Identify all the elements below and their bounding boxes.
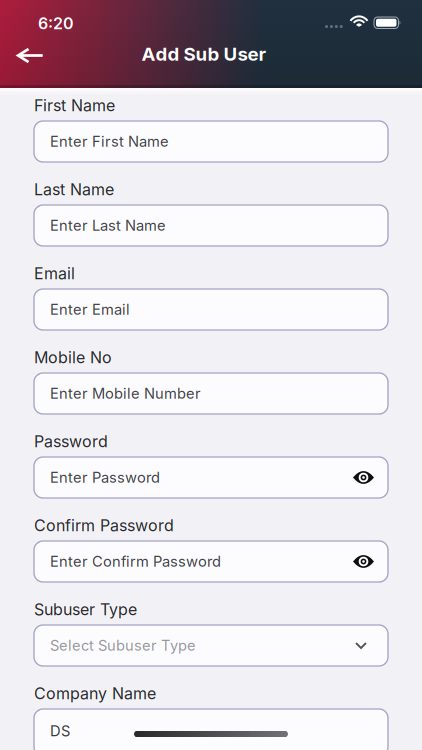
staticText: Company Name bbox=[34, 684, 156, 703]
staticText: Select Subuser Type bbox=[50, 637, 196, 654]
staticText: Confirm Password bbox=[34, 516, 174, 535]
staticText: Mobile No bbox=[34, 348, 112, 367]
button[interactable]: Back bbox=[16, 48, 44, 63]
button[interactable]: DS bbox=[34, 709, 388, 750]
staticText: Enter Password bbox=[50, 469, 160, 486]
staticText: Enter First Name bbox=[50, 133, 169, 150]
staticText: Email bbox=[34, 264, 75, 283]
staticText: Enter Mobile Number bbox=[50, 385, 201, 402]
button[interactable]: Enter Last Name bbox=[34, 205, 388, 246]
staticText: 6:20 bbox=[38, 14, 74, 33]
button[interactable]: Enter Password bbox=[34, 457, 388, 498]
button[interactable]: Show password bbox=[353, 470, 374, 484]
staticText: First Name bbox=[34, 96, 115, 115]
staticText: Subuser Type bbox=[34, 600, 137, 619]
button[interactable]: Show confirm password bbox=[353, 554, 374, 568]
button[interactable]: Enter Mobile Number bbox=[34, 373, 388, 414]
staticText: DS bbox=[50, 722, 70, 740]
staticText: Enter Email bbox=[50, 301, 130, 318]
button[interactable]: Enter First Name bbox=[34, 121, 388, 162]
staticText: Enter Last Name bbox=[50, 217, 166, 234]
staticText: Last Name bbox=[34, 180, 114, 199]
button[interactable]: Enter Confirm Password bbox=[34, 541, 388, 582]
staticText: Add Sub User bbox=[141, 43, 266, 65]
button[interactable]: Select Subuser Type bbox=[34, 625, 388, 666]
staticText: Enter Confirm Password bbox=[50, 553, 221, 570]
button[interactable]: Enter Email bbox=[34, 289, 388, 330]
staticText: Password bbox=[34, 432, 108, 451]
